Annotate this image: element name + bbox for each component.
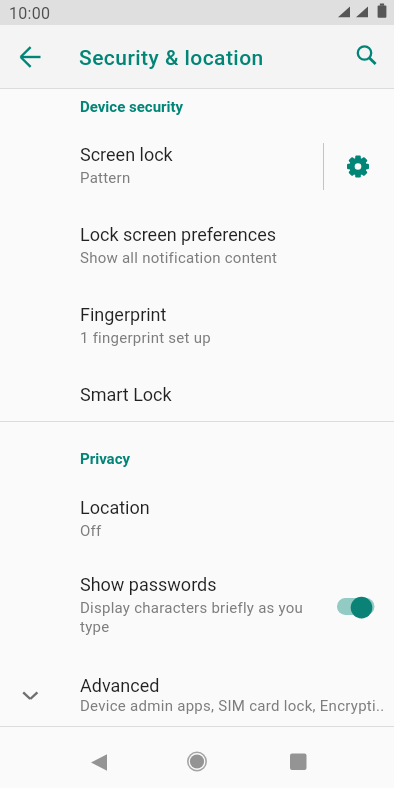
staticText: Smart Lock [80, 384, 172, 405]
staticText: Device security [80, 98, 184, 116]
button[interactable] [0, 368, 394, 420]
button[interactable] [0, 481, 394, 559]
button[interactable] [0, 208, 394, 286]
staticText: Fingerprint [80, 304, 167, 325]
button[interactable] [0, 561, 394, 657]
staticText: Advanced [80, 675, 160, 696]
button[interactable] [334, 142, 382, 190]
staticText: Screen lock [80, 144, 173, 165]
staticText: Lock screen preferences [80, 224, 276, 245]
button[interactable] [271, 738, 319, 786]
staticText: Show all notification content [80, 249, 278, 267]
button[interactable] [75, 738, 123, 786]
staticText: 10:00 [9, 4, 51, 23]
staticText: Display characters briefly as you type [80, 599, 315, 635]
staticText: Device admin apps, SIM card lock, Encryp… [80, 697, 385, 715]
button[interactable] [173, 738, 221, 786]
button[interactable] [0, 288, 394, 366]
staticText: 1 fingerprint set up [80, 329, 211, 347]
button[interactable] [342, 33, 390, 81]
staticText: Off [80, 522, 102, 540]
staticText: Security & location [79, 46, 264, 71]
button[interactable] [0, 128, 324, 206]
staticText: Location [80, 497, 150, 518]
staticText: Pattern [80, 169, 131, 187]
staticText: Privacy [80, 450, 131, 468]
button[interactable] [6, 33, 54, 81]
button[interactable] [0, 660, 394, 726]
staticText: Show passwords [80, 574, 217, 595]
